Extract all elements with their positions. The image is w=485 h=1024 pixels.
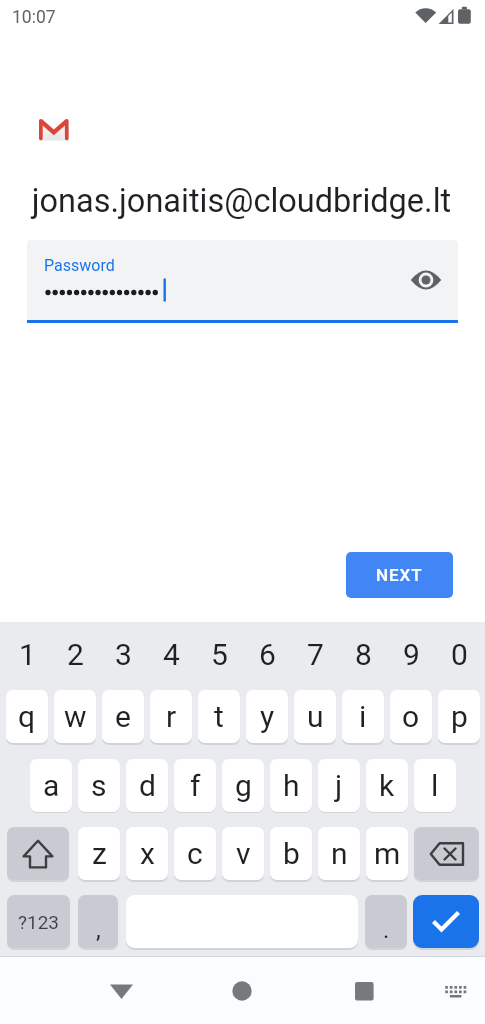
staticText: o (402, 699, 420, 734)
button[interactable]: z (78, 827, 120, 880)
staticText: 8 (355, 637, 372, 672)
button[interactable]: j (318, 759, 360, 812)
staticText: 3 (115, 637, 132, 672)
button[interactable]: i (342, 690, 384, 743)
staticText: ?123 (18, 911, 60, 933)
button[interactable] (27, 240, 458, 320)
staticText: n (331, 836, 348, 871)
button[interactable]: e (102, 690, 144, 743)
button[interactable]: u (294, 690, 336, 743)
button[interactable]: d (126, 759, 168, 812)
button[interactable]: ?123 (7, 895, 70, 948)
staticText: r (166, 699, 177, 734)
button[interactable]: 9 (390, 630, 432, 679)
button[interactable]: 7 (294, 630, 336, 679)
staticText: t (214, 699, 224, 734)
button[interactable]: t (198, 690, 240, 743)
button[interactable]: 3 (102, 630, 144, 679)
button[interactable]: o (390, 690, 432, 743)
staticText: b (283, 836, 300, 871)
staticText: a (43, 768, 60, 803)
staticText: jonas.jonaitis@cloudbridge.lt (0, 182, 484, 220)
staticText: q (18, 699, 36, 734)
staticText: 4 (163, 637, 180, 672)
staticText: Password (44, 256, 115, 275)
button[interactable]: c (174, 827, 216, 880)
button[interactable] (413, 895, 479, 948)
staticText: 9 (403, 637, 420, 672)
staticText: i (359, 699, 367, 734)
staticText: 0 (451, 637, 468, 672)
staticText: w (64, 699, 87, 734)
staticText: NEXT (376, 565, 423, 585)
staticText: z (92, 836, 107, 871)
button[interactable] (217, 966, 267, 1016)
staticText: 6 (259, 637, 276, 672)
staticText: 5 (211, 637, 228, 672)
button[interactable]: NEXT (346, 552, 453, 598)
button[interactable]: 6 (246, 630, 288, 679)
button[interactable] (414, 827, 479, 880)
staticText: 10:07 (12, 7, 56, 28)
button[interactable]: y (246, 690, 288, 743)
button[interactable]: g (222, 759, 264, 812)
button[interactable]: 8 (342, 630, 384, 679)
button[interactable]: 2 (54, 630, 96, 679)
button[interactable]: k (366, 759, 408, 812)
staticText: k (379, 768, 395, 803)
staticText: 7 (307, 637, 324, 672)
button[interactable]: b (270, 827, 312, 880)
staticText: v (236, 836, 251, 871)
staticText: h (283, 768, 300, 803)
staticText: d (139, 768, 156, 803)
button[interactable]: q (6, 690, 48, 743)
button[interactable]: 5 (198, 630, 240, 679)
button[interactable]: r (150, 690, 192, 743)
button[interactable]: x (126, 827, 168, 880)
staticText: x (140, 836, 155, 871)
staticText: s (91, 768, 107, 803)
button[interactable] (437, 972, 475, 1010)
staticText: l (431, 768, 439, 803)
button[interactable]: . (365, 895, 407, 948)
button[interactable] (7, 827, 69, 880)
button[interactable] (339, 966, 389, 1016)
button[interactable]: 0 (438, 630, 480, 679)
button[interactable]: 1 (6, 630, 48, 679)
staticText: f (190, 768, 201, 803)
staticText: . (383, 916, 390, 944)
button[interactable]: f (174, 759, 216, 812)
button[interactable]: l (414, 759, 456, 812)
button[interactable]: p (438, 690, 480, 743)
button[interactable]: v (222, 827, 264, 880)
staticText: u (307, 699, 324, 734)
staticText: , (96, 916, 101, 944)
staticText: y (260, 699, 275, 734)
button[interactable]: w (54, 690, 96, 743)
staticText: p (451, 699, 468, 734)
button[interactable]: a (30, 759, 72, 812)
button[interactable]: n (318, 827, 360, 880)
button[interactable]: 4 (150, 630, 192, 679)
button[interactable]: , (78, 895, 118, 948)
staticText: 2 (67, 637, 84, 672)
staticText: j (335, 768, 343, 803)
button[interactable]: m (366, 827, 408, 880)
staticText: c (187, 836, 203, 871)
staticText: g (235, 768, 252, 803)
button[interactable] (96, 966, 146, 1016)
staticText: e (115, 699, 131, 734)
button[interactable]: h (270, 759, 312, 812)
staticText: 1 (19, 637, 36, 672)
staticText: m (374, 836, 401, 871)
button[interactable]: s (78, 759, 120, 812)
button[interactable] (405, 260, 447, 300)
